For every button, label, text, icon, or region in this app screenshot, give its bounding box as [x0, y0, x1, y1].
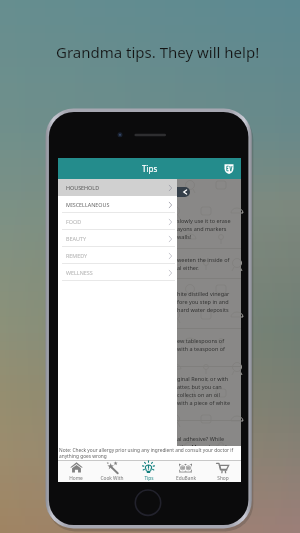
staticText: weeten the inside of: [177, 256, 230, 263]
button[interactable]: Cook With: [94, 461, 130, 482]
staticText: MISCELLANEOUS: [66, 201, 110, 208]
staticText: Grandma tips. They will help!: [56, 42, 260, 62]
staticText: atter, but you can: [177, 383, 222, 390]
staticText: fore you step in and: [177, 298, 229, 305]
staticText: with a teaspoon of: [177, 345, 225, 352]
staticText: Cook With: [100, 475, 124, 482]
button[interactable]: FOOD: [58, 213, 177, 230]
staticText: HOUSEHOLD: [66, 184, 100, 191]
staticText: Note: Check your allergy prior using any…: [59, 447, 234, 454]
button[interactable]: Back: [167, 187, 190, 197]
staticText: Home: [69, 475, 83, 482]
button[interactable]: WELLNESS: [58, 264, 177, 281]
button[interactable]: HOUSEHOLD: [58, 179, 177, 196]
staticText: ew tablespoons of: [177, 337, 225, 344]
staticText: Tips: [144, 475, 154, 482]
button[interactable]: MISCELLANEOUS: [58, 196, 177, 213]
staticText: al either.: [177, 264, 199, 271]
staticText: walls!: [177, 233, 192, 240]
button[interactable]: REMEDY: [58, 247, 177, 264]
staticText: WELLNESS: [66, 269, 93, 276]
staticText: with a piece of white: [177, 399, 231, 406]
staticText: EduBank: [176, 475, 196, 482]
button[interactable]: Shop: [204, 461, 241, 482]
staticText: anything goes wrong: [59, 453, 107, 460]
staticText: al adhesive? While: [177, 435, 225, 442]
staticText: hard water deposits: [177, 306, 229, 313]
button[interactable]: Home: [58, 461, 94, 482]
staticText: Tips: [142, 163, 158, 174]
staticText: slowly use it to erase: [177, 217, 231, 224]
staticText: ginal Renoir, or with: [177, 375, 229, 382]
staticText: oil or Mayo. Just rub: [177, 443, 229, 446]
button[interactable]: App logo: [222, 162, 235, 175]
staticText: hite distilled vinegar: [177, 290, 230, 297]
staticText: REMEDY: [66, 252, 88, 259]
button[interactable]: Tips: [130, 461, 167, 482]
staticText: Shop: [217, 475, 229, 482]
staticText: FOOD: [66, 218, 82, 225]
button[interactable]: EduBank: [167, 461, 204, 482]
staticText: collects on an oil: [177, 391, 220, 398]
button[interactable]: BEAUTY: [58, 230, 177, 247]
staticText: ayons and markers: [177, 225, 227, 232]
staticText: BEAUTY: [66, 235, 86, 242]
